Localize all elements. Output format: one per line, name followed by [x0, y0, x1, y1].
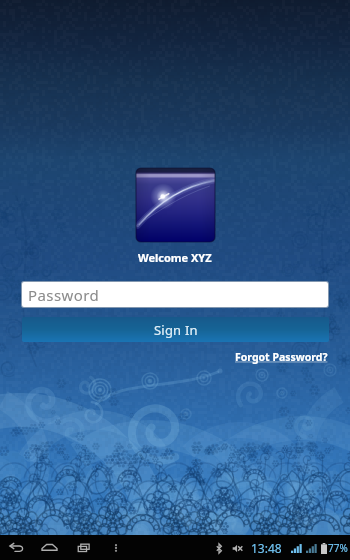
button[interactable]: Back: [9, 540, 24, 555]
button[interactable]: Sign In: [22, 317, 329, 342]
button[interactable]: Password: [22, 282, 328, 307]
staticText: Password: [28, 285, 100, 305]
button[interactable]: Forgot Password?: [235, 350, 328, 364]
staticText: 77%: [328, 541, 348, 555]
staticText: Sign In: [154, 321, 198, 339]
button[interactable]: Recent apps: [76, 540, 92, 556]
staticText: Welcome XYZ: [138, 250, 212, 265]
button[interactable]: Home: [41, 539, 58, 556]
button[interactable]: Menu: [109, 541, 123, 555]
staticText: 13:48: [251, 540, 282, 556]
staticText: Forgot Password?: [235, 350, 328, 364]
